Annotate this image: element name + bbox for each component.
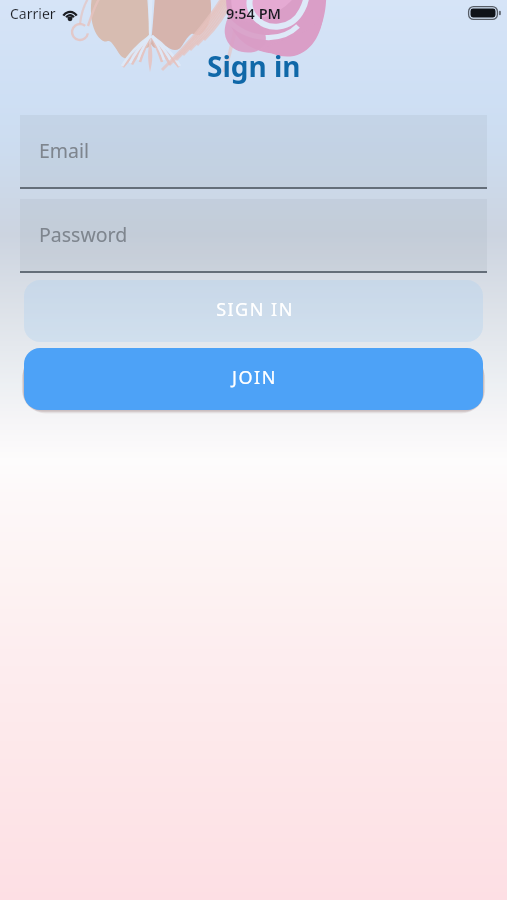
- button[interactable]: JOIN: [24, 348, 483, 410]
- staticText: 9:54 PM: [226, 3, 282, 23]
- button[interactable]: Password: [20, 199, 487, 273]
- button[interactable]: Email: [20, 115, 487, 189]
- staticText: SIGN IN: [216, 297, 294, 322]
- staticText: Sign in: [207, 47, 301, 85]
- staticText: Email: [39, 137, 90, 164]
- staticText: JOIN: [232, 365, 277, 390]
- button[interactable]: SIGN IN: [24, 280, 483, 342]
- staticText: Carrier: [10, 4, 56, 23]
- staticText: Password: [39, 221, 128, 248]
